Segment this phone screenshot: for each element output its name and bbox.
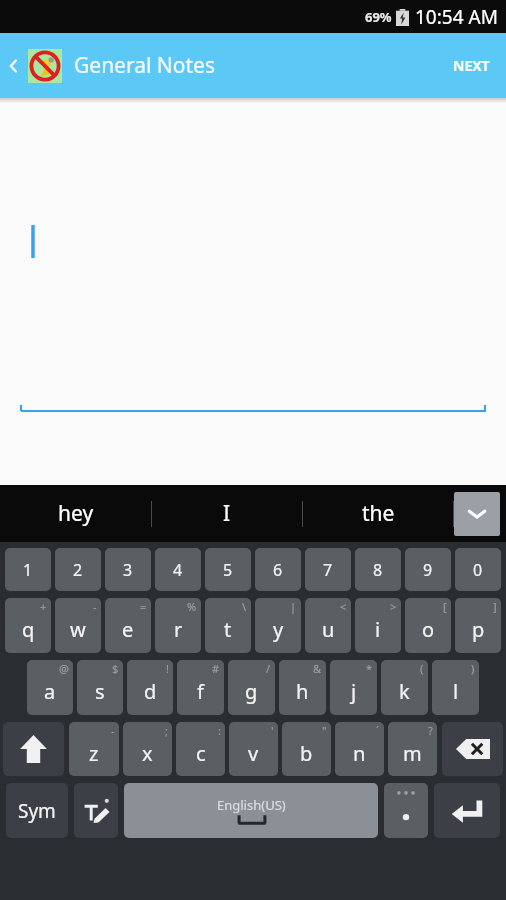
staticText: General Notes xyxy=(74,51,216,80)
button[interactable]: = xyxy=(105,598,151,653)
staticText: $ xyxy=(112,661,119,676)
staticText: i xyxy=(375,616,381,643)
staticText: 4 xyxy=(173,559,183,581)
staticText: - xyxy=(93,599,97,614)
staticText: h xyxy=(296,678,309,705)
staticText: I xyxy=(223,499,231,528)
staticText: ! xyxy=(166,661,169,676)
staticText: ) xyxy=(471,661,475,676)
staticText: a xyxy=(44,678,56,705)
staticText: 10:54 AM xyxy=(415,4,498,30)
button[interactable]: Back xyxy=(0,33,28,98)
staticText: # xyxy=(212,661,220,676)
staticText: @ xyxy=(59,661,69,676)
staticText: \ xyxy=(242,599,247,614)
button[interactable]: ] xyxy=(455,598,501,653)
button[interactable]: @ xyxy=(27,660,73,715)
button[interactable]: * xyxy=(330,660,377,715)
button[interactable]: the xyxy=(303,485,453,542)
button[interactable]: ? xyxy=(388,722,437,776)
button[interactable]: I xyxy=(152,485,302,542)
button[interactable]: ) xyxy=(432,660,479,715)
button[interactable]: Space xyxy=(124,783,378,838)
button[interactable]: + xyxy=(5,598,51,653)
button[interactable]: > xyxy=(355,598,401,653)
button[interactable]: / xyxy=(228,660,275,715)
button[interactable]: # xyxy=(177,660,224,715)
staticText: % xyxy=(187,599,197,614)
button[interactable]: Note text field xyxy=(0,98,506,328)
button[interactable]: ( xyxy=(381,660,428,715)
button[interactable]: 5 xyxy=(205,548,251,591)
staticText: x xyxy=(142,740,153,767)
button[interactable]: Period xyxy=(384,783,428,838)
button[interactable]: : xyxy=(176,722,225,776)
button[interactable]: Backspace xyxy=(442,722,503,776)
staticText: n xyxy=(353,740,366,767)
button[interactable]: ' xyxy=(229,722,278,776)
staticText: ( xyxy=(420,661,424,676)
staticText: o xyxy=(422,616,435,643)
staticText: " xyxy=(322,723,327,738)
staticText: < xyxy=(340,599,347,614)
button[interactable]: ´ xyxy=(335,722,384,776)
staticText: e xyxy=(122,616,134,643)
button[interactable]: ! xyxy=(127,660,173,715)
button[interactable]: - xyxy=(55,598,101,653)
button[interactable]: & xyxy=(279,660,326,715)
button[interactable]: \ xyxy=(205,598,251,653)
staticText: q xyxy=(22,616,35,643)
button[interactable]: NEXT xyxy=(437,33,506,98)
button[interactable]: " xyxy=(282,722,331,776)
button[interactable]: Enter xyxy=(434,783,500,838)
staticText: j xyxy=(351,678,357,705)
staticText: z xyxy=(89,740,99,767)
staticText: hey xyxy=(58,499,94,528)
staticText: Sym xyxy=(18,798,56,824)
staticText: 3 xyxy=(123,559,133,581)
staticText: ´ xyxy=(376,723,380,738)
staticText: > xyxy=(390,599,397,614)
staticText: 9 xyxy=(423,559,433,581)
button[interactable]: Shift xyxy=(3,722,64,776)
staticText: l xyxy=(453,678,459,705)
staticText: ] xyxy=(493,599,497,614)
staticText: s xyxy=(95,678,105,705)
staticText: & xyxy=(313,661,322,676)
staticText: p xyxy=(472,616,485,643)
button[interactable]: 9 xyxy=(405,548,451,591)
staticText: 1 xyxy=(23,559,33,581)
button[interactable]: - xyxy=(69,722,119,776)
button[interactable]: 7 xyxy=(305,548,351,591)
button[interactable]: 4 xyxy=(155,548,201,591)
button[interactable]: [ xyxy=(405,598,451,653)
staticText: f xyxy=(197,678,204,705)
staticText: 69% xyxy=(365,8,392,26)
button[interactable]: < xyxy=(305,598,351,653)
button[interactable]: 3 xyxy=(105,548,151,591)
button[interactable]: Sym xyxy=(6,783,68,838)
button[interactable]: | xyxy=(255,598,301,653)
staticText: ? xyxy=(428,723,433,738)
staticText: 8 xyxy=(373,559,383,581)
button[interactable]: 1 xyxy=(5,548,51,591)
staticText: English(US) xyxy=(217,796,286,814)
staticText: y xyxy=(273,616,284,643)
button[interactable]: Keyboard settings xyxy=(74,783,118,838)
button[interactable]: hey xyxy=(0,485,151,542)
button[interactable]: % xyxy=(155,598,201,653)
staticText: = xyxy=(140,599,147,614)
button[interactable]: 6 xyxy=(255,548,301,591)
staticText: - xyxy=(111,723,115,738)
button[interactable]: 0 xyxy=(455,548,501,591)
staticText: 2 xyxy=(73,559,83,581)
staticText: the xyxy=(362,499,395,528)
staticText: k xyxy=(399,678,410,705)
button[interactable]: $ xyxy=(77,660,123,715)
button[interactable]: ; xyxy=(123,722,172,776)
button[interactable]: 2 xyxy=(55,548,101,591)
button[interactable]: Hide suggestions xyxy=(454,492,500,536)
button[interactable]: 8 xyxy=(355,548,401,591)
staticText: w xyxy=(70,616,86,643)
staticText: t xyxy=(224,616,232,643)
